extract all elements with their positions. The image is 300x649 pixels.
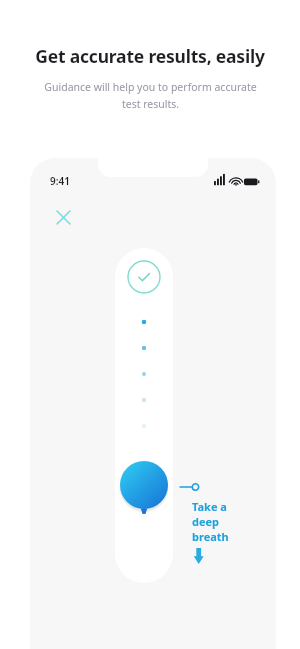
staticText: deep [192, 514, 220, 529]
staticText: breath [192, 529, 229, 544]
staticText: Get accurate results, easily [35, 44, 265, 68]
button[interactable]: Close [50, 204, 76, 230]
staticText: Guidance will help you to perform accura… [44, 80, 257, 111]
staticText: 9:41 [50, 174, 70, 188]
staticText: Take a [192, 499, 227, 514]
